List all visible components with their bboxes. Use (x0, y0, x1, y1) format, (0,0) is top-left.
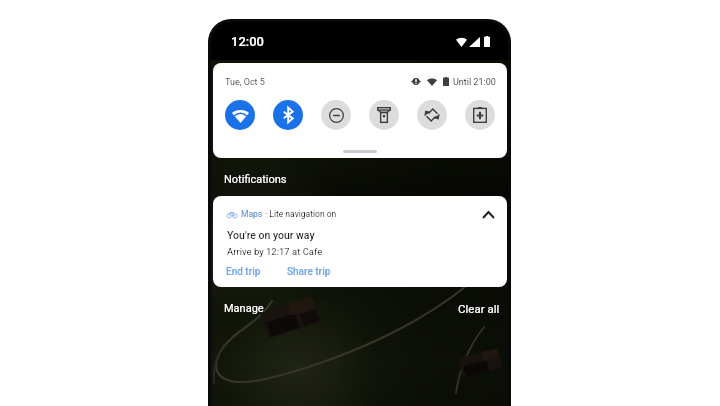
staticText: Maps (241, 209, 263, 219)
staticText: Notifications (224, 173, 287, 186)
staticText: Tue, Oct 5 (225, 77, 265, 88)
staticText: · Lite navigation on (265, 209, 337, 219)
button[interactable]: Do not disturb (321, 100, 351, 130)
staticText: 12:00 (231, 34, 264, 49)
button[interactable]: Collapse notification (476, 203, 500, 227)
button[interactable]: End trip (226, 266, 261, 278)
button[interactable]: Clear all (458, 302, 500, 315)
button[interactable]: Wi-Fi (225, 100, 255, 130)
staticText: Arrive by 12:17 at Cafe (227, 246, 323, 257)
button[interactable]: Flashlight (369, 100, 399, 130)
staticText: You're on your way (227, 229, 315, 241)
button[interactable]: Maps (213, 196, 507, 287)
button[interactable]: Battery saver (465, 100, 495, 130)
button[interactable]: Auto rotate (417, 100, 447, 130)
button[interactable]: Manage (224, 302, 264, 315)
button[interactable]: Share trip (287, 266, 331, 278)
staticText: Until 21:00 (453, 77, 496, 88)
button[interactable]: Bluetooth (273, 100, 303, 130)
